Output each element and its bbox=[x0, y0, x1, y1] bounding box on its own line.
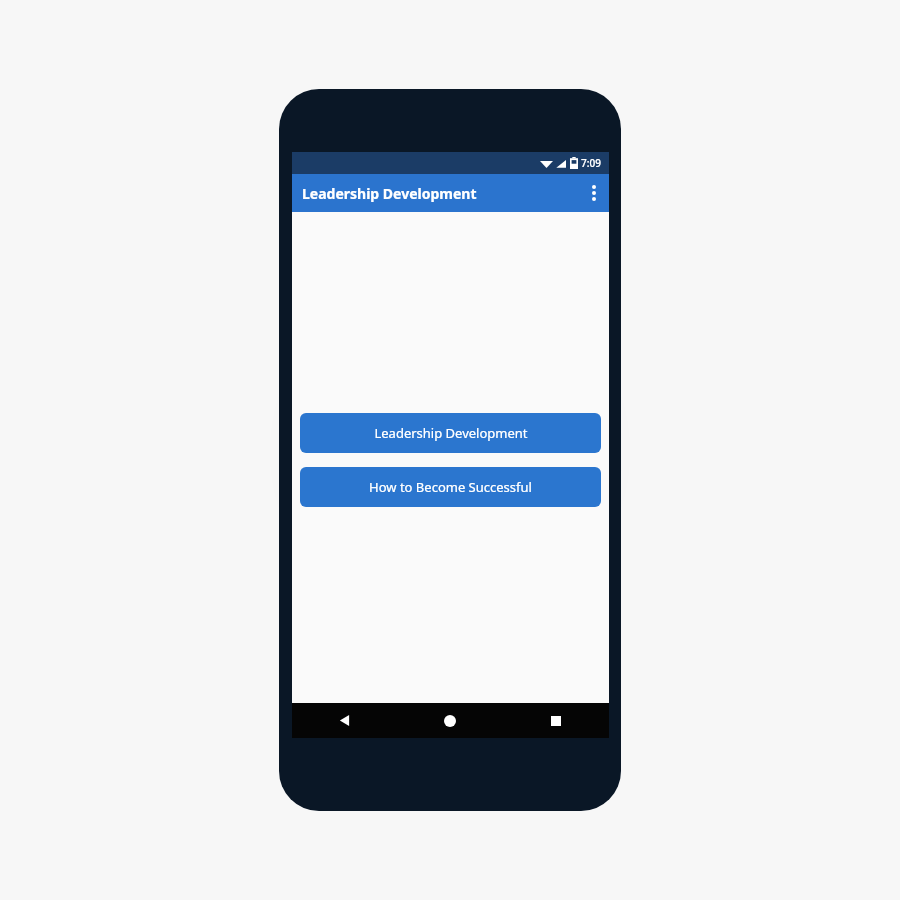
staticText: 7:09 bbox=[581, 156, 601, 170]
button[interactable]: Back bbox=[292, 703, 397, 738]
staticText: Leadership Development bbox=[302, 184, 477, 203]
button[interactable]: Leadership Development bbox=[300, 413, 601, 453]
staticText: How to Become Successful bbox=[369, 478, 532, 496]
button[interactable]: More options bbox=[579, 174, 609, 212]
staticText: Leadership Development bbox=[374, 424, 528, 442]
button[interactable]: How to Become Successful bbox=[300, 467, 601, 507]
button[interactable]: Home bbox=[397, 703, 503, 738]
button[interactable]: Recent apps bbox=[503, 703, 609, 738]
